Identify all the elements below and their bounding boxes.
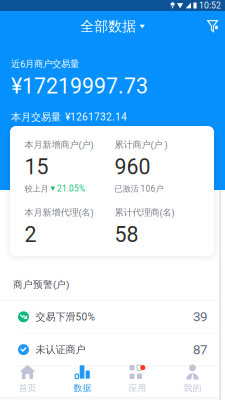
staticText: 未认证商户 [35, 343, 85, 356]
staticText: 本月交易量 [11, 111, 61, 124]
staticText: 全部数据 [80, 18, 136, 35]
staticText: 39 [193, 309, 207, 325]
button[interactable]: 数据 [55, 364, 110, 398]
staticText: 58 [114, 222, 138, 247]
button[interactable]: 首页 [0, 364, 55, 398]
button[interactable]: 全部数据 [72, 14, 153, 38]
button[interactable]: 应用 [110, 364, 165, 398]
button[interactable]: Filter [202, 15, 223, 38]
staticText: 累计代理商(名) [114, 207, 174, 218]
staticText: 累计商户(户 ) [114, 139, 167, 150]
staticText: 应用 [128, 382, 146, 394]
staticText: 15 [24, 154, 48, 179]
staticText: 960 [114, 154, 150, 179]
staticText: 首页 [18, 382, 36, 394]
staticText: 交易下滑50% [35, 310, 94, 323]
staticText: 本月新增代理(名) [24, 207, 93, 218]
staticText: 2 [24, 222, 36, 247]
staticText: 近6月商户交易量 [11, 58, 79, 70]
staticText: 商户预警(户) [13, 278, 69, 291]
staticText: 我的 [183, 382, 201, 394]
button[interactable]: 未认证商户 [0, 334, 220, 366]
staticText: ¥17219997.73 [11, 74, 148, 99]
staticText: 已激活 106户 [114, 183, 163, 194]
staticText: 较上月 [24, 183, 48, 194]
staticText: 数据 [73, 382, 91, 394]
button[interactable]: 交易下滑50% [0, 301, 220, 333]
staticText: 87 [193, 342, 207, 357]
staticText: 10:52 [199, 0, 221, 11]
staticText: 本月新增商户(户) [24, 139, 93, 150]
staticText: 21.05% [57, 184, 85, 193]
staticText: ¥1261732.14 [65, 111, 127, 123]
button[interactable]: 我的 [165, 364, 220, 398]
